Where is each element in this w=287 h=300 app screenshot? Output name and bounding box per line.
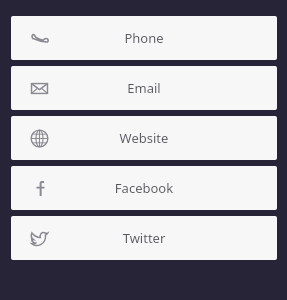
other: Twitter xyxy=(30,229,49,248)
button[interactable]: Website xyxy=(11,116,277,160)
other: Facebook xyxy=(30,179,49,198)
other: Email xyxy=(30,79,49,98)
button[interactable]: Twitter xyxy=(11,216,277,260)
other: Website xyxy=(30,129,49,148)
button[interactable]: Phone xyxy=(11,16,277,60)
staticText: Email xyxy=(11,79,277,97)
button[interactable]: Facebook xyxy=(11,166,277,210)
staticText: Website xyxy=(11,129,277,147)
staticText: Facebook xyxy=(11,179,277,197)
button[interactable]: Email xyxy=(11,66,277,110)
staticText: Phone xyxy=(11,29,277,47)
staticText: Twitter xyxy=(11,229,277,247)
other: Phone xyxy=(30,29,49,48)
